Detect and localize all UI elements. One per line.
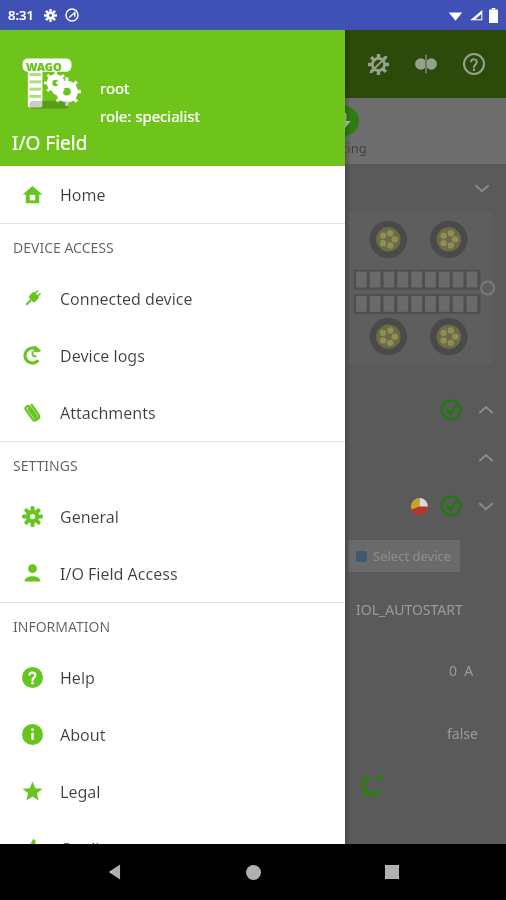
staticText: IOL_AUTOSTART [356,600,463,619]
button[interactable]: DIO [127,102,181,161]
button[interactable]: Legal [0,763,345,820]
staticText: Select device [373,547,452,565]
staticText: General [60,506,119,528]
staticText: role: specialist [100,106,200,126]
staticText: Legal [60,781,101,803]
button[interactable]: Home [229,848,277,896]
staticText: Forcing [321,139,367,157]
staticText: Help [60,667,95,689]
button[interactable]: Refresh [356,769,388,801]
button[interactable]: Attachments [0,384,345,441]
button[interactable]: Back [91,848,139,896]
button[interactable]: Select device [348,540,460,572]
button[interactable]: About [0,706,345,763]
button[interactable]: Home [0,166,345,223]
button[interactable]: General [0,488,345,545]
staticText: Device logs [60,345,145,367]
staticText: DEVICE ACCESS [13,238,114,257]
staticText: Credits [60,838,113,860]
staticText: WAGO [26,59,62,74]
staticText: root [100,78,130,98]
button[interactable]: Forcing [309,102,379,161]
staticText: 0 A [449,661,474,680]
staticText: I/O Field Access [60,563,178,585]
staticText: Connected device [60,288,193,310]
staticText: false [447,724,478,743]
staticText: INFORMATION [13,617,111,636]
button[interactable]: Device logs [0,327,345,384]
button[interactable]: Recents [368,848,416,896]
button[interactable]: Connected device [0,270,345,327]
button[interactable]: Connection [406,44,446,84]
staticText: SETTINGS [13,456,78,475]
staticText: Attachments [60,402,156,424]
staticText: 8:31 [8,6,34,24]
button[interactable]: Credits [0,820,345,877]
staticText: Home [60,184,106,206]
button[interactable]: Settings [358,44,398,84]
button[interactable]: I/O Field Access [0,545,345,602]
staticText: I/O Field [12,130,88,156]
button[interactable]: WAGO [0,30,345,166]
button[interactable]: Help [0,649,345,706]
button[interactable]: Help [454,44,494,84]
staticText: About [60,724,106,746]
